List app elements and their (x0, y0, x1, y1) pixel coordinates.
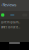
staticText: ‹ Reviews (0, 2, 16, 7)
staticText: Lorem ipsum dolor sit (1, 20, 20, 24)
staticText: amet consectetur (1, 25, 20, 29)
button[interactable]: ‹ Reviews (0, 2, 16, 7)
